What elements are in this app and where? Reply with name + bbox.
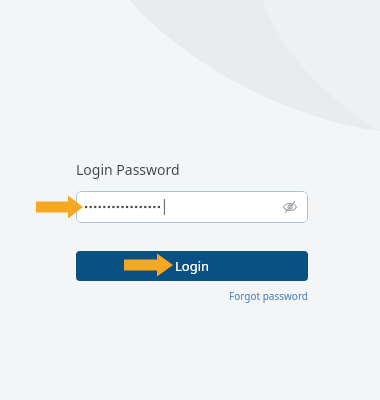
button[interactable]: Show password [280, 197, 300, 217]
staticText: Login [175, 257, 210, 275]
button[interactable]: Login [76, 251, 308, 281]
button[interactable]: Show password [76, 191, 308, 223]
staticText: Forgot password [228, 289, 308, 303]
staticText: Login Password [76, 160, 180, 179]
button[interactable]: Forgot password [228, 289, 308, 303]
